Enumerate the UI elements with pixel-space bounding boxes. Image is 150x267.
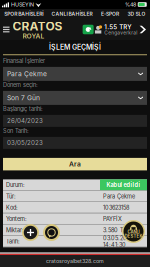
staticText: CANLI BAHİSLER [52,11,93,17]
staticText: Finansal İşlemler [3,57,45,64]
staticText: ROYAL [22,32,44,40]
staticText: Son Tarih: [3,127,29,134]
staticText: Cengaverkral [104,30,137,36]
staticText: 03/05/2023 [7,139,43,147]
staticText: Başlangıç tarihi: [3,105,43,112]
staticText: 26/04/2023 [7,117,43,125]
button[interactable]: WhatsApp support [43,224,60,241]
staticText: Tür: [6,193,16,200]
staticText: SPOR BAHİSLERİ [4,11,43,17]
staticText: Para Çekme [103,193,135,200]
staticText: CANLI [127,229,139,234]
staticText: E-SPOR [101,11,119,17]
staticText: DESTEK [124,233,142,239]
button[interactable]: Cratos Royal home [12,17,62,42]
button[interactable]: Account: 1.55 TRY, Cengaverkral [94,19,150,40]
button[interactable]: Ara [3,158,147,170]
staticText: CRATOS [12,19,62,33]
staticText: %48 [125,1,136,8]
staticText: Durum: [6,182,25,188]
staticText: PAYFİX [103,216,122,222]
button[interactable]: SPOR BAHİSLERİ [0,9,47,19]
staticText: İŞLEM GEÇMİŞİ [49,43,101,51]
button[interactable]: Refresh balance [83,25,94,34]
staticText: cratosroyalbet328.com [46,258,104,264]
staticText: 1.55 TRY [104,23,131,31]
staticText: Tarih: [6,238,20,245]
button[interactable]: Add [22,224,39,241]
staticText: Kod: [6,204,18,211]
staticText: HUSEYIN [11,1,34,8]
staticText: Para Çekme [7,70,47,78]
staticText: Dönem seçin: [3,81,38,88]
button[interactable]: Son 7 Gün [3,91,147,105]
staticText: Ara [69,160,81,168]
button[interactable]: 26/04/2023 [3,115,147,127]
staticText: Son 7 Gün [7,94,40,102]
button[interactable]: Live support [122,220,145,243]
staticText: Kabul edildi [106,182,140,188]
staticText: 103623158 [103,204,129,211]
staticText: Yöntem: [6,216,27,222]
staticText: 3.580 TRY [103,227,131,234]
button[interactable]: E-SPOR [97,9,123,19]
button[interactable]: 3D SLO [123,9,150,19]
staticText: 3D SLO [127,11,145,17]
staticText: Miktar: [6,227,24,234]
button[interactable]: Para Çekme [3,67,147,81]
button[interactable]: Menu [0,21,12,38]
staticText: 03.05.2023 14:41:30 [103,235,133,248]
button[interactable]: CANLI BAHİSLER [47,9,97,19]
button[interactable]: 03/05/2023 [3,137,147,149]
